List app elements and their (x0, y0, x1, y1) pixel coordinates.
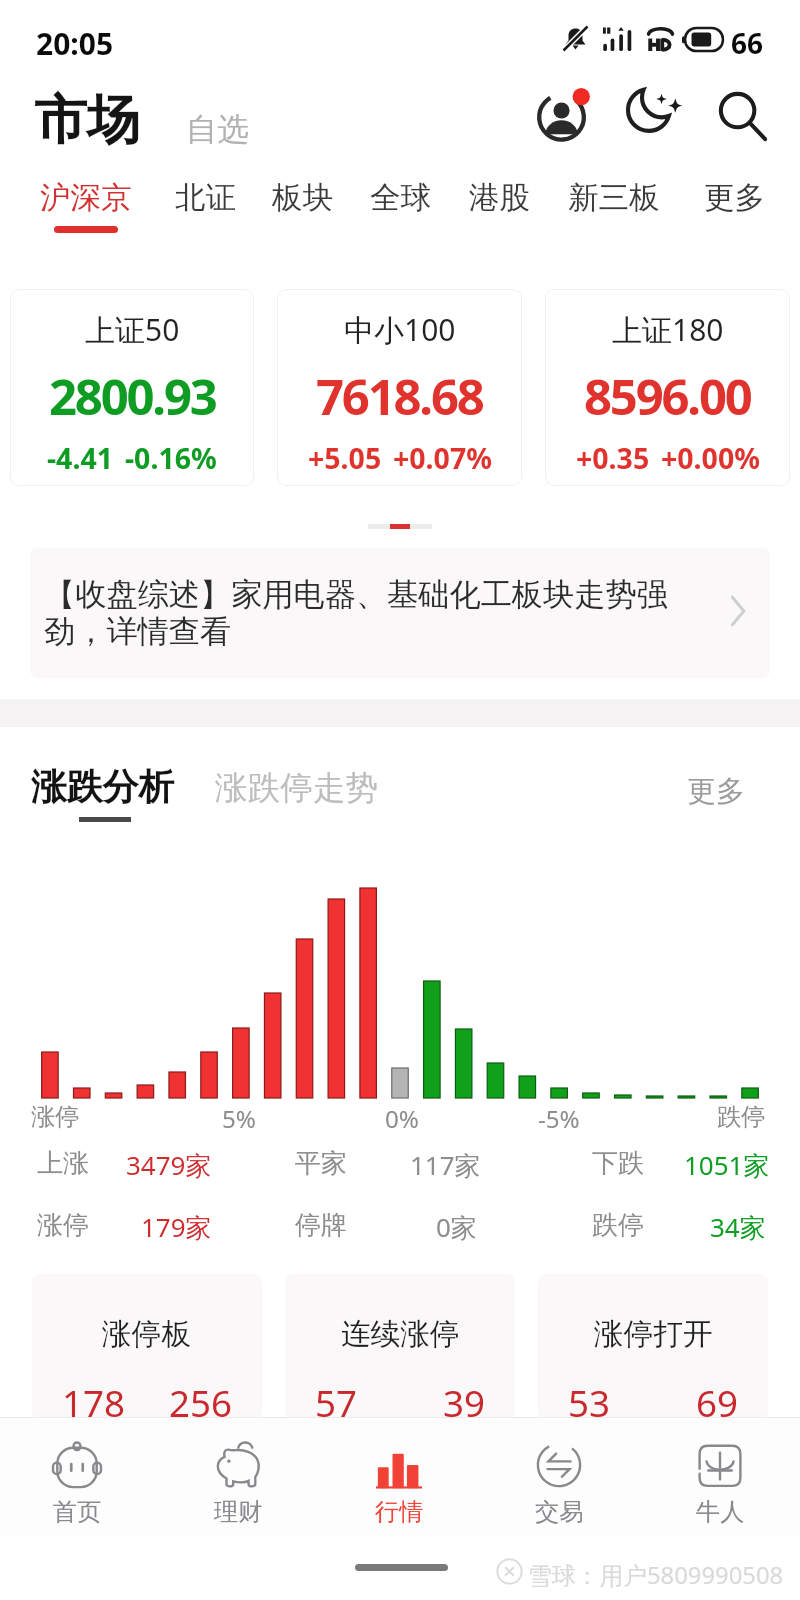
staticText: 下跌 (592, 1147, 644, 1180)
staticText: 69 (696, 1378, 738, 1422)
staticText: 涨停打开 (594, 1315, 713, 1352)
staticText: 53 (568, 1378, 610, 1422)
staticText: 港股 (469, 179, 531, 218)
staticText: 更多 (687, 773, 745, 810)
staticText: 256 (169, 1378, 232, 1422)
staticText: 涨停 (37, 1209, 89, 1242)
button[interactable] (158, 1418, 318, 1535)
staticText: 板块 (272, 179, 334, 218)
staticText: 179家 (141, 1209, 212, 1245)
staticText: 上涨 (37, 1147, 89, 1180)
staticText: 20:05 (36, 23, 114, 64)
staticText: 跌停 (592, 1209, 644, 1242)
staticText: 涨跌停走势 (215, 768, 378, 809)
button[interactable]: 板块 (272, 179, 334, 218)
button[interactable] (319, 1418, 479, 1535)
staticText: 行情 (375, 1497, 424, 1527)
staticText: 更多 (704, 179, 766, 218)
staticText: 1051家 (684, 1147, 770, 1183)
staticText: 7618.68 (316, 363, 483, 430)
staticText: 0% (385, 1102, 419, 1135)
button[interactable]: 上证50 (10, 289, 254, 486)
staticText: 3479家 (126, 1147, 212, 1183)
button[interactable]: 涨停打开 (538, 1274, 768, 1422)
staticText: +0.35 (576, 439, 650, 478)
staticText: 178 (62, 1378, 125, 1422)
staticText: 交易 (535, 1497, 584, 1527)
button[interactable]: Night mode (619, 79, 691, 151)
staticText: 停牌 (295, 1209, 347, 1242)
staticText: 平家 (295, 1147, 347, 1180)
button[interactable]: 更多 (704, 179, 766, 218)
staticText: 0家 (436, 1209, 477, 1245)
staticText: 涨跌分析 (31, 765, 175, 810)
staticText: 沪深京 (40, 179, 132, 218)
button[interactable]: 沪深京 (40, 179, 132, 218)
button[interactable] (0, 1418, 157, 1535)
staticText: -5% (538, 1102, 580, 1135)
button[interactable]: 连续涨停 (285, 1274, 515, 1422)
staticText: 市场 (34, 87, 140, 154)
staticText: +5.05 (308, 439, 382, 478)
staticText: 中小100 (344, 309, 456, 350)
staticText: 上证50 (85, 309, 180, 350)
staticText: 涨停 (31, 1102, 80, 1132)
staticText: 57 (315, 1378, 357, 1422)
staticText: 5% (222, 1102, 256, 1135)
staticText: 66 (731, 24, 764, 62)
staticText: +0.00% (661, 439, 760, 478)
staticText: 8596.00 (584, 363, 751, 430)
staticText: 雪球：用户5809990508 (528, 1559, 784, 1592)
button[interactable]: 【收盘综述】家用电器、基础化工板块走势强劲，详情查看 (30, 548, 770, 678)
staticText: 2800.93 (49, 363, 216, 430)
button[interactable]: 中小100 (277, 289, 522, 486)
button[interactable] (479, 1418, 639, 1535)
staticText: 上证180 (612, 309, 724, 350)
staticText: 39 (443, 1378, 485, 1422)
staticText: 全球 (370, 179, 432, 218)
staticText: 首页 (53, 1497, 102, 1527)
staticText: 34家 (710, 1209, 766, 1245)
button[interactable]: 港股 (469, 179, 531, 218)
button[interactable]: 更多 (687, 773, 745, 810)
staticText: 北证 (175, 179, 237, 218)
staticText: 连续涨停 (341, 1315, 460, 1352)
staticText: 新三板 (568, 179, 660, 218)
button[interactable]: 上证180 (545, 289, 790, 486)
button[interactable]: Search (706, 79, 780, 153)
staticText: -4.41 (47, 439, 114, 478)
staticText: 117家 (410, 1147, 481, 1183)
staticText: -0.16% (125, 439, 217, 478)
button[interactable]: 全球 (370, 179, 432, 218)
button[interactable]: 涨停板 (32, 1274, 262, 1422)
button[interactable]: 北证 (175, 179, 237, 218)
staticText: 牛人 (696, 1497, 745, 1527)
staticText: 涨停板 (102, 1315, 192, 1352)
staticText: 理财 (214, 1497, 263, 1527)
staticText: 【收盘综述】家用电器、基础化工板块走势强劲，详情查看 (44, 575, 714, 651)
staticText: +0.07% (393, 439, 492, 478)
button[interactable] (640, 1418, 800, 1535)
staticText: 自选 (186, 110, 249, 150)
button[interactable]: 新三板 (568, 179, 660, 218)
staticText: 跌停 (717, 1102, 766, 1132)
button[interactable]: Account (528, 79, 600, 151)
